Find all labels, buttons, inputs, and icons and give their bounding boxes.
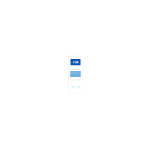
staticText: See all: [71, 85, 80, 89]
staticText: Balance due: [71, 68, 80, 70]
staticText: Recent activity: [71, 79, 80, 81]
staticText: VISA: [72, 60, 78, 64]
button[interactable]: Statement ready: [70, 71, 81, 77]
staticText: View now: [72, 74, 78, 76]
staticText: Statement ready: [70, 72, 81, 74]
